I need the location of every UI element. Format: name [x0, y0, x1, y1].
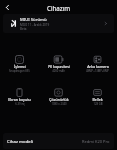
- staticText: Ekran boyutu: [8, 97, 31, 102]
- button[interactable]: İşlemci: [0, 49, 39, 82]
- staticText: Bellek: [92, 97, 103, 102]
- button[interactable]: Arka kamera: [78, 49, 117, 82]
- staticText: 4000 mAh: [52, 69, 65, 73]
- staticText: Redmi K20 Pro: [82, 139, 110, 144]
- button[interactable]: MIUI Sürümü: [3, 14, 114, 33]
- button[interactable]: Bellek: [78, 82, 117, 115]
- staticText: Cihazım: [47, 4, 71, 12]
- staticText: Pil kapasitesi: [48, 64, 70, 69]
- staticText: 6.39 inç: [15, 102, 25, 106]
- staticText: MIUI 11 - Aralık 2019: [20, 23, 50, 27]
- button[interactable]: Pil kapasitesi: [39, 49, 78, 82]
- staticText: 1080 x 2340: [51, 102, 67, 106]
- staticText: MIUI Sürümü: [20, 17, 47, 23]
- staticText: 48MP+13MP+8MP: [86, 69, 109, 73]
- staticText: Cihaz modeli: [7, 138, 33, 144]
- staticText: 128 GB: [93, 102, 103, 106]
- button[interactable]: Cihaz modeli: [3, 133, 114, 149]
- staticText: Çözünürlük: [49, 97, 69, 102]
- staticText: İşlemci: [14, 64, 26, 69]
- staticText: Beta: [20, 27, 27, 31]
- staticText: Snapdragon 855: [9, 69, 30, 73]
- button[interactable]: Back: [0, 0, 15, 15]
- button[interactable]: Çözünürlük: [39, 82, 78, 115]
- staticText: Arka kamera: [87, 64, 109, 69]
- button[interactable]: Ekran boyutu: [0, 82, 39, 115]
